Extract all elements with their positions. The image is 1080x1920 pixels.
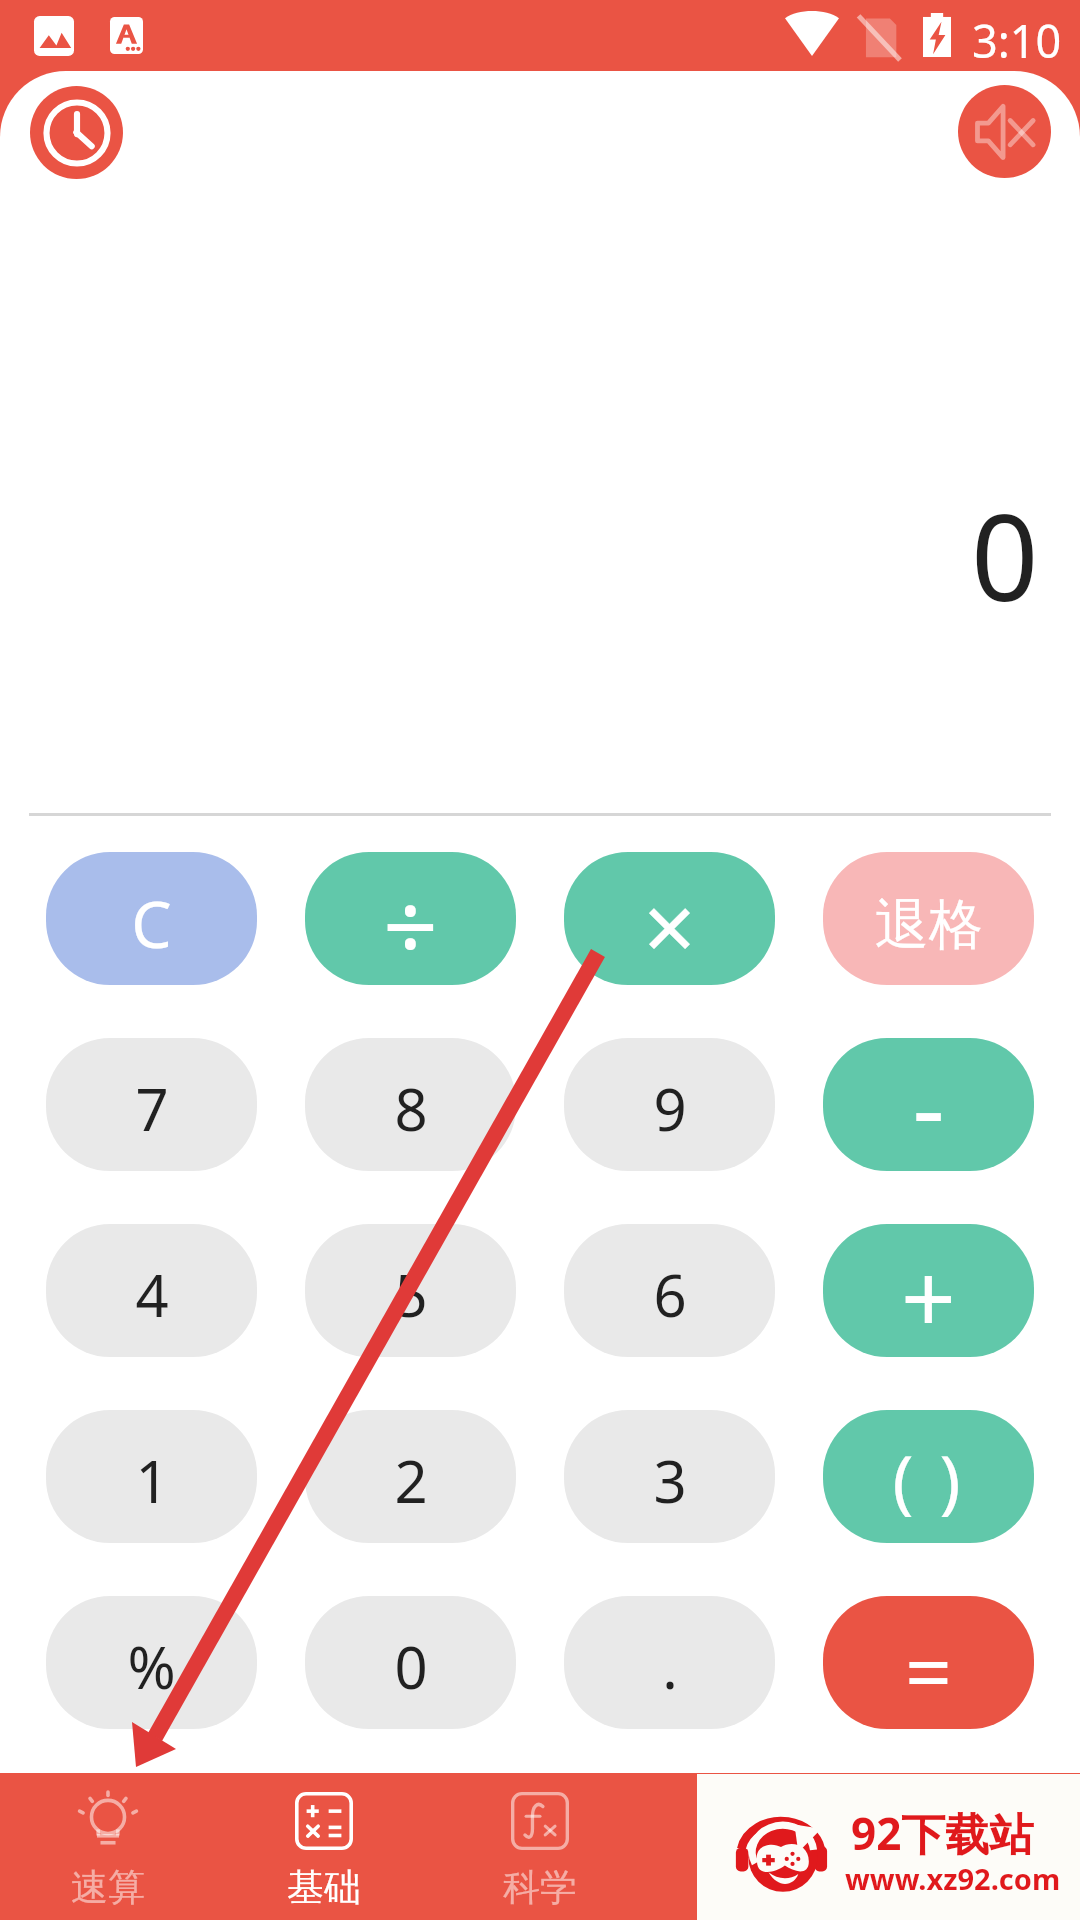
staticText: www.xz92.com	[845, 1859, 1061, 1898]
button[interactable]: 0	[305, 1596, 516, 1729]
staticText: C	[131, 880, 172, 967]
staticText: 科学	[503, 1864, 577, 1911]
staticText: 4	[135, 1255, 169, 1334]
button[interactable]: =	[823, 1596, 1034, 1729]
staticText: 8	[394, 1069, 428, 1148]
button[interactable]: 6	[564, 1224, 775, 1357]
button[interactable]: +	[823, 1224, 1034, 1357]
staticText: 速算	[71, 1864, 145, 1911]
button[interactable]: 8	[305, 1038, 516, 1171]
button[interactable]: C	[46, 852, 257, 985]
staticText: 退格	[875, 891, 983, 959]
button[interactable]: 退格	[823, 852, 1034, 985]
button[interactable]: 7	[46, 1038, 257, 1171]
button[interactable]: 4	[46, 1224, 257, 1357]
staticText: ÷	[383, 859, 438, 985]
staticText: .	[662, 1627, 678, 1706]
staticText: 3	[653, 1441, 687, 1520]
button[interactable]: %	[46, 1596, 257, 1729]
button[interactable]: .	[564, 1596, 775, 1729]
staticText: 9	[653, 1069, 687, 1148]
staticText: 92下载站	[851, 1803, 1034, 1863]
button[interactable]: 1	[46, 1410, 257, 1543]
staticText: -	[912, 1038, 945, 1170]
staticText: +	[901, 1231, 956, 1357]
button[interactable]: 9	[564, 1038, 775, 1171]
staticText: 1	[135, 1441, 169, 1520]
staticText: ( )	[892, 1431, 965, 1526]
button[interactable]: -	[823, 1038, 1034, 1171]
button[interactable]: History	[30, 86, 123, 179]
staticText: =	[905, 1614, 952, 1726]
button[interactable]: 5	[305, 1224, 516, 1357]
staticText: 0	[394, 1627, 428, 1706]
button[interactable]: ( )	[823, 1410, 1034, 1543]
staticText: 6	[653, 1255, 687, 1334]
button[interactable]: ×	[564, 852, 775, 985]
button[interactable]: 2	[305, 1410, 516, 1543]
button[interactable]: 3	[564, 1410, 775, 1543]
button[interactable]: ÷	[305, 852, 516, 985]
staticText: 基础	[287, 1864, 361, 1911]
staticText: ×	[643, 863, 696, 985]
button[interactable]: 速算	[0, 1774, 216, 1920]
staticText: 0	[971, 475, 1039, 636]
button[interactable]: 科学	[432, 1774, 648, 1920]
staticText: 5	[394, 1255, 428, 1334]
button[interactable]: Mute	[958, 85, 1051, 178]
staticText: 3:10	[972, 10, 1062, 71]
staticText: 2	[394, 1441, 428, 1520]
staticText: %	[127, 1627, 176, 1706]
staticText: 7	[135, 1069, 169, 1148]
button[interactable]: 基础	[216, 1774, 432, 1920]
